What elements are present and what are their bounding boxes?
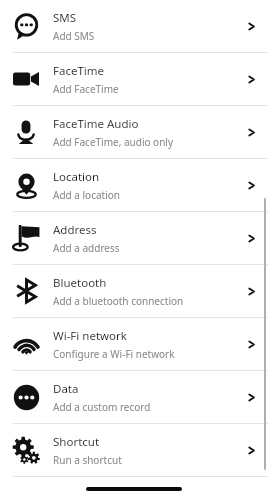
other: Open Location: [242, 176, 260, 194]
other: Open Wi-Fi network: [242, 335, 260, 353]
staticText: Add a bluetooth connection: [53, 294, 184, 308]
button[interactable]: Data: [0, 371, 268, 423]
button[interactable]: FaceTime Audio: [0, 106, 268, 158]
button[interactable]: Wi-Fi network: [0, 318, 268, 370]
staticText: Add SMS: [53, 29, 95, 43]
other: Open FaceTime Audio: [242, 123, 260, 141]
staticText: SMS: [53, 10, 77, 26]
button[interactable]: Address: [0, 212, 268, 264]
staticText: Configure a Wi-Fi network: [53, 347, 175, 361]
staticText: Wi-Fi network: [53, 328, 127, 344]
staticText: Location: [53, 169, 100, 185]
staticText: Add a location: [53, 188, 120, 202]
staticText: Address: [53, 222, 97, 238]
staticText: FaceTime: [53, 63, 105, 79]
button[interactable]: SMS: [0, 0, 268, 52]
button[interactable]: Bluetooth: [0, 265, 268, 317]
staticText: Add FaceTime: [53, 82, 119, 96]
staticText: Add a address: [53, 241, 120, 255]
staticText: Add a custom record: [53, 400, 151, 414]
other: Open FaceTime: [242, 70, 260, 88]
staticText: Bluetooth: [53, 275, 107, 291]
other: Open Address: [242, 229, 260, 247]
other: Open Shortcut: [242, 441, 260, 459]
staticText: Run a shortcut: [53, 453, 122, 467]
other: Open Bluetooth: [242, 282, 260, 300]
other: Open Data: [242, 388, 260, 406]
button[interactable]: Location: [0, 159, 268, 211]
button[interactable]: FaceTime: [0, 53, 268, 105]
staticText: FaceTime Audio: [53, 116, 139, 132]
staticText: Add FaceTime, audio only: [53, 135, 174, 149]
staticText: Shortcut: [53, 434, 100, 450]
button[interactable]: Shortcut: [0, 424, 268, 476]
staticText: Data: [53, 381, 79, 397]
other: Open SMS: [242, 17, 260, 35]
